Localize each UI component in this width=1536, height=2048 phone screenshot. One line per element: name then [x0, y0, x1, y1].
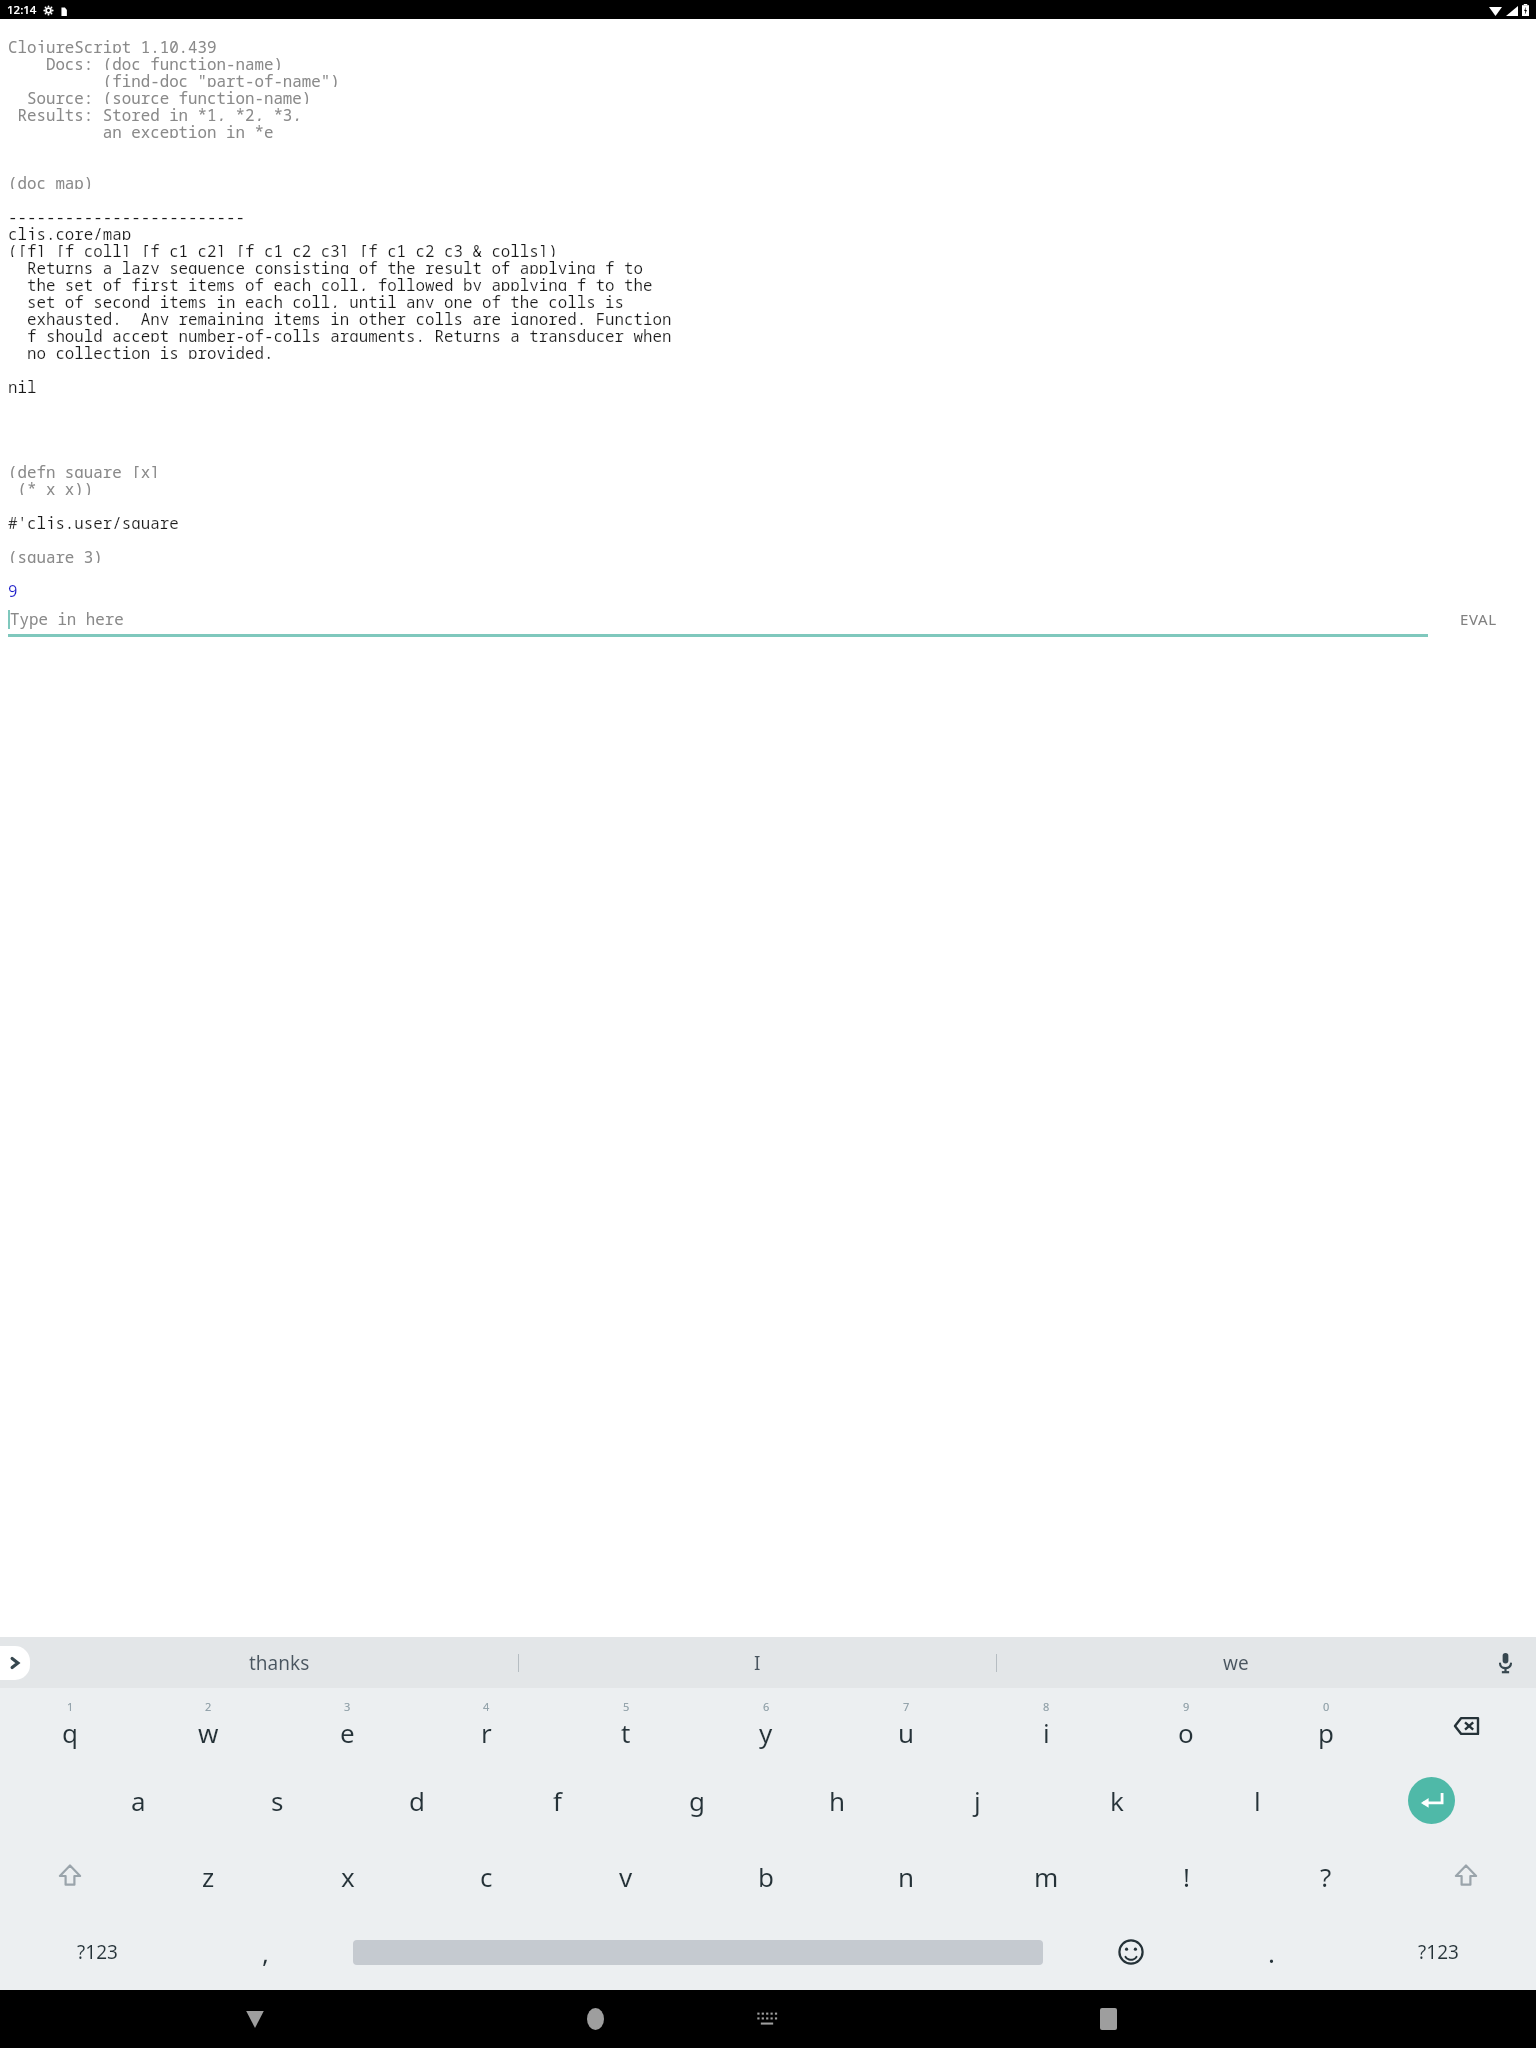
- staticText: cljs.core/map: [8, 223, 1528, 240]
- staticText: 4: [483, 1699, 490, 1714]
- staticText: g: [689, 1783, 705, 1818]
- button[interactable]: I: [519, 1637, 996, 1688]
- button[interactable]: Emoji: [1061, 1914, 1201, 1990]
- button[interactable]: k: [1047, 1763, 1187, 1838]
- staticText: Returns a lazy sequence consisting of th…: [8, 257, 1528, 274]
- button[interactable]: Type in here: [8, 601, 1428, 637]
- button[interactable]: 8: [976, 1688, 1116, 1763]
- staticText: 1: [67, 1699, 74, 1714]
- button[interactable]: we: [997, 1637, 1474, 1688]
- button[interactable]: Home: [510, 1990, 681, 2048]
- button[interactable]: z: [139, 1838, 278, 1914]
- button[interactable]: Shift: [0, 1838, 139, 1914]
- button[interactable]: 5: [556, 1688, 696, 1763]
- staticText: ?123: [1418, 1939, 1459, 1965]
- button[interactable]: Hide keyboard: [681, 1990, 852, 2048]
- button[interactable]: a: [69, 1763, 208, 1838]
- button[interactable]: g: [627, 1763, 767, 1838]
- staticText: ?123: [77, 1939, 118, 1965]
- button[interactable]: 2: [139, 1688, 278, 1763]
- button[interactable]: Space: [335, 1914, 1061, 1990]
- staticText: set of second items in each coll, until …: [8, 291, 1528, 308]
- staticText: k: [1110, 1783, 1124, 1818]
- staticText: (square 3): [8, 546, 1528, 563]
- staticText: an exception in *e: [8, 121, 1528, 138]
- button[interactable]: Shift: [1396, 1838, 1536, 1914]
- staticText: (find-doc "part-of-name"): [8, 70, 1528, 87]
- button[interactable]: Back: [170, 1990, 340, 2048]
- staticText: c: [480, 1859, 493, 1894]
- button[interactable]: 4: [417, 1688, 556, 1763]
- button[interactable]: j: [907, 1763, 1047, 1838]
- staticText: (* x x)): [8, 478, 1528, 495]
- button[interactable]: Recent apps: [1023, 1990, 1194, 2048]
- button[interactable]: n: [836, 1838, 976, 1914]
- button[interactable]: c: [417, 1838, 556, 1914]
- staticText: r: [481, 1715, 492, 1750]
- button[interactable]: ?123: [1341, 1914, 1536, 1990]
- staticText: 2: [205, 1699, 212, 1714]
- button[interactable]: d: [347, 1763, 487, 1838]
- staticText: ,: [262, 1935, 269, 1970]
- button[interactable]: ?: [1256, 1838, 1396, 1914]
- staticText: Type in here: [10, 608, 124, 630]
- staticText: Results: Stored in *1, *2, *3,: [8, 104, 1528, 121]
- staticText: 9: [1183, 1699, 1190, 1714]
- button[interactable]: EVAL: [1428, 601, 1528, 637]
- button[interactable]: s: [208, 1763, 347, 1838]
- button[interactable]: Backspace: [1396, 1688, 1536, 1763]
- staticText: z: [202, 1859, 215, 1894]
- staticText: 7: [903, 1699, 910, 1714]
- staticText: d: [409, 1783, 425, 1818]
- staticText: .: [1268, 1935, 1275, 1970]
- staticText: f: [553, 1783, 562, 1818]
- button[interactable]: v: [556, 1838, 696, 1914]
- button[interactable]: 1: [0, 1688, 139, 1763]
- button[interactable]: Enter: [1327, 1763, 1536, 1838]
- button[interactable]: 7: [836, 1688, 976, 1763]
- staticText: q: [62, 1715, 78, 1750]
- button[interactable]: !: [1116, 1838, 1256, 1914]
- button[interactable]: .: [1201, 1914, 1341, 1990]
- button[interactable]: b: [696, 1838, 836, 1914]
- staticText: s: [271, 1783, 284, 1818]
- staticText: 0: [1323, 1699, 1330, 1714]
- staticText: 8: [1043, 1699, 1050, 1714]
- button[interactable]: ,: [195, 1914, 335, 1990]
- staticText: EVAL: [1460, 609, 1497, 629]
- staticText: i: [1043, 1715, 1050, 1750]
- button[interactable]: m: [976, 1838, 1116, 1914]
- button[interactable]: 3: [278, 1688, 417, 1763]
- staticText: b: [758, 1859, 774, 1894]
- staticText: y: [759, 1715, 773, 1750]
- staticText: 12:14: [7, 2, 37, 18]
- button[interactable]: h: [767, 1763, 907, 1838]
- staticText: ([f] [f coll] [f c1 c2] [f c1 c2 c3] [f …: [8, 240, 1528, 257]
- button[interactable]: Expand suggestions: [0, 1646, 30, 1680]
- button[interactable]: f: [487, 1763, 627, 1838]
- button[interactable]: 0: [1256, 1688, 1396, 1763]
- staticText: v: [619, 1859, 633, 1894]
- button[interactable]: x: [278, 1838, 417, 1914]
- button[interactable]: 9: [1116, 1688, 1256, 1763]
- staticText: f should accept number-of-colls argument…: [8, 325, 1528, 342]
- button[interactable]: 6: [696, 1688, 836, 1763]
- staticText: -------------------------: [8, 206, 1528, 223]
- button[interactable]: l: [1187, 1763, 1327, 1838]
- button[interactable]: ?123: [0, 1914, 195, 1990]
- staticText: h: [829, 1783, 846, 1818]
- staticText: no collection is provided.: [8, 342, 1528, 359]
- staticText: w: [198, 1715, 219, 1750]
- button[interactable]: Voice input: [1488, 1646, 1522, 1680]
- staticText: 5: [623, 1699, 630, 1714]
- button[interactable]: thanks: [40, 1637, 518, 1688]
